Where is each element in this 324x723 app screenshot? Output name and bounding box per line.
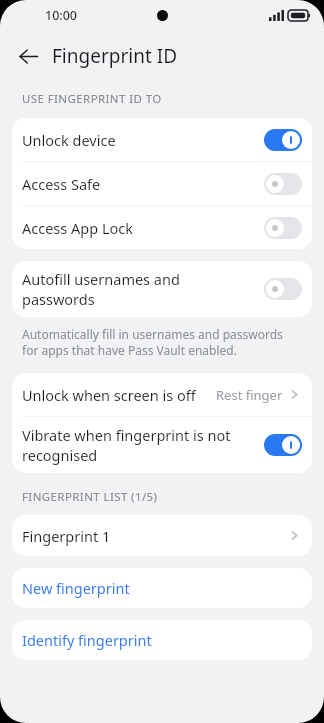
button[interactable]: Unlock device [264,129,302,151]
button[interactable]: Unlock when screen is off [12,373,312,416]
staticText: Automatically fill in usernames and pass… [22,326,302,358]
staticText: Access Safe [22,174,254,194]
staticText: Vibrate when fingerprint is not recognis… [22,425,254,465]
button[interactable]: New fingerprint [12,568,312,608]
button[interactable]: Identify fingerprint [12,620,312,660]
button[interactable]: Autofill usernames and passwords [264,278,302,300]
button[interactable]: Access App Lock [264,217,302,239]
staticText: Rest finger [216,386,283,404]
button[interactable]: Fingerprint 1 [12,515,312,556]
button[interactable]: Access App Lock [12,206,312,249]
staticText: FINGERPRINT LIST (1/5) [22,489,158,505]
staticText: 10:00 [45,7,78,24]
staticText: USE FINGERPRINT ID TO [22,91,162,107]
staticText: Unlock when screen is off [22,385,196,405]
button[interactable]: Access Safe [12,162,312,205]
staticText: Identify fingerprint [22,630,152,650]
staticText: Fingerprint 1 [22,526,111,546]
button[interactable]: Vibrate when fingerprint is not recognis… [12,417,312,473]
staticText: Autofill usernames and passwords [22,269,254,309]
button[interactable]: Vibrate when fingerprint is not recognis… [264,434,302,456]
staticText: Unlock device [22,130,254,150]
staticText: New fingerprint [22,578,130,598]
staticText: Fingerprint ID [52,43,178,69]
button[interactable]: Unlock device [12,118,312,161]
button[interactable]: Access Safe [264,173,302,195]
button[interactable]: Autofill usernames and passwords [12,261,312,317]
staticText: Access App Lock [22,218,254,238]
button[interactable]: Back [8,36,48,76]
